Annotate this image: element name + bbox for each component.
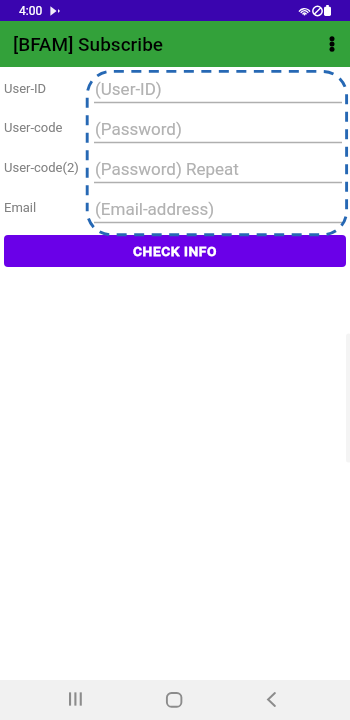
staticText: (Email-address) xyxy=(95,199,215,219)
button[interactable]: More options xyxy=(313,21,350,67)
button[interactable]: User-ID xyxy=(0,67,350,104)
button[interactable]: Back xyxy=(239,679,304,719)
staticText: 4:00 xyxy=(19,4,43,18)
staticText: Email xyxy=(4,200,94,215)
button[interactable]: User-code(2) xyxy=(0,144,350,184)
button[interactable]: Email xyxy=(0,184,350,224)
staticText: (User-ID) xyxy=(95,79,162,99)
staticText: (Password) xyxy=(95,119,182,139)
staticText: (Password) Repeat xyxy=(95,159,239,179)
staticText: User-code(2) xyxy=(4,160,94,175)
staticText: User-code xyxy=(4,120,94,135)
button[interactable]: CHECK INFO xyxy=(4,235,346,267)
staticText: CHECK INFO xyxy=(133,243,217,259)
button[interactable]: Recents xyxy=(43,679,108,719)
staticText: User-ID xyxy=(4,81,94,96)
button[interactable]: Home xyxy=(141,679,206,719)
button[interactable]: User-code xyxy=(0,104,350,144)
staticText: [BFAM] Subscribe xyxy=(13,33,164,55)
